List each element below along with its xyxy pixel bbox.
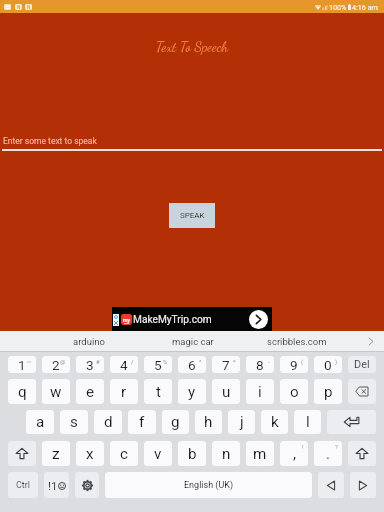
- button[interactable]: f: [128, 410, 156, 434]
- staticText: ): [335, 358, 338, 365]
- button[interactable]: ,: [280, 441, 308, 466]
- staticText: 5: [154, 357, 162, 373]
- button[interactable]: s: [60, 410, 88, 434]
- button[interactable]: g: [162, 410, 189, 434]
- button[interactable]: u: [212, 379, 240, 404]
- button[interactable]: m: [246, 441, 274, 466]
- staticText: z: [52, 445, 60, 463]
- staticText: o: [290, 383, 299, 401]
- button[interactable]: d: [94, 410, 122, 434]
- button[interactable]: l: [294, 410, 321, 434]
- button[interactable]: a: [26, 410, 54, 434]
- staticText: ,: [293, 445, 296, 463]
- button[interactable]: 5: [144, 356, 172, 373]
- staticText: n: [222, 445, 231, 463]
- staticText: .: [326, 445, 331, 463]
- button[interactable]: y: [178, 379, 206, 404]
- button[interactable]: SPEAK: [169, 203, 215, 228]
- staticText: b: [188, 445, 197, 463]
- staticText: ✉: [5, 5, 11, 10]
- button[interactable]: 0: [314, 356, 342, 373]
- button[interactable]: 6: [178, 356, 206, 373]
- staticText: 0: [324, 357, 332, 373]
- staticText: MakeMyTrip.com: [133, 314, 212, 326]
- staticText: (: [301, 358, 304, 365]
- button[interactable]: Cursor right: [350, 472, 376, 498]
- button[interactable]: Shift: [8, 441, 36, 466]
- staticText: 6: [188, 357, 196, 373]
- button[interactable]: 9: [280, 356, 308, 373]
- button[interactable]: v: [144, 441, 172, 466]
- button[interactable]: w: [42, 379, 70, 404]
- staticText: 9: [290, 357, 298, 373]
- button[interactable]: .: [314, 441, 342, 466]
- button[interactable]: my: [112, 307, 272, 332]
- button[interactable]: z: [42, 441, 70, 466]
- staticText: p: [324, 383, 333, 401]
- button[interactable]: x: [76, 441, 104, 466]
- button[interactable]: j: [228, 410, 255, 434]
- button[interactable]: t: [144, 379, 172, 404]
- staticText: l: [306, 413, 310, 431]
- staticText: Enter some text to speak: [3, 136, 97, 146]
- staticText: 8: [256, 357, 264, 373]
- staticText: /: [131, 358, 134, 365]
- button[interactable]: 8: [246, 356, 274, 373]
- staticText: f: [139, 413, 145, 431]
- staticText: s: [70, 413, 78, 431]
- button[interactable]: Open ad: [249, 310, 268, 329]
- staticText: t: [156, 383, 161, 401]
- staticText: -: [268, 358, 270, 365]
- button[interactable]: 7: [212, 356, 240, 373]
- button[interactable]: i: [246, 379, 274, 404]
- button[interactable]: Symbols and emoji: [44, 472, 69, 498]
- button[interactable]: Ctrl: [8, 472, 38, 498]
- button[interactable]: Settings: [75, 472, 99, 498]
- button[interactable]: q: [8, 379, 36, 404]
- staticText: 7: [222, 357, 230, 373]
- staticText: arduino: [73, 336, 105, 347]
- staticText: *: [233, 358, 236, 365]
- staticText: w: [50, 383, 62, 401]
- staticText: g: [171, 413, 180, 431]
- button[interactable]: scribbles.com: [245, 331, 349, 351]
- staticText: ~: [27, 358, 32, 365]
- button[interactable]: arduino: [37, 331, 141, 351]
- staticText: i: [258, 383, 262, 401]
- staticText: Ctrl: [16, 480, 31, 491]
- button[interactable]: h: [195, 410, 222, 434]
- staticText: m: [253, 445, 267, 463]
- button[interactable]: Enter: [327, 410, 376, 434]
- button[interactable]: magic car: [141, 331, 245, 351]
- button[interactable]: e: [76, 379, 104, 404]
- staticText: my: [123, 317, 130, 323]
- staticText: magic car: [172, 336, 214, 347]
- button[interactable]: 4: [110, 356, 138, 373]
- button[interactable]: 1: [8, 356, 36, 373]
- staticText: k: [271, 413, 279, 431]
- button[interactable]: r: [110, 379, 138, 404]
- button[interactable]: 3: [76, 356, 104, 373]
- staticText: English (UK): [184, 480, 234, 491]
- button[interactable]: More suggestions: [358, 331, 384, 351]
- staticText: c: [120, 445, 128, 463]
- button[interactable]: p: [314, 379, 342, 404]
- button[interactable]: o: [280, 379, 308, 404]
- staticText: 1: [18, 357, 26, 373]
- button[interactable]: Backspace: [348, 379, 376, 404]
- button[interactable]: English (UK): [105, 472, 312, 498]
- staticText: SPEAK: [180, 211, 205, 220]
- staticText: r: [121, 383, 127, 401]
- button[interactable]: Shift: [348, 441, 376, 466]
- button[interactable]: Cursor left: [318, 472, 344, 498]
- button[interactable]: Del: [348, 356, 376, 373]
- staticText: 4: [120, 357, 128, 373]
- button[interactable]: n: [212, 441, 240, 466]
- staticText: q: [18, 383, 27, 401]
- button[interactable]: c: [110, 441, 138, 466]
- staticText: 4:16 am: [352, 3, 378, 11]
- button[interactable]: b: [178, 441, 206, 466]
- button[interactable]: 2: [42, 356, 70, 373]
- staticText: Text To Speech: [156, 38, 229, 55]
- button[interactable]: k: [261, 410, 288, 434]
